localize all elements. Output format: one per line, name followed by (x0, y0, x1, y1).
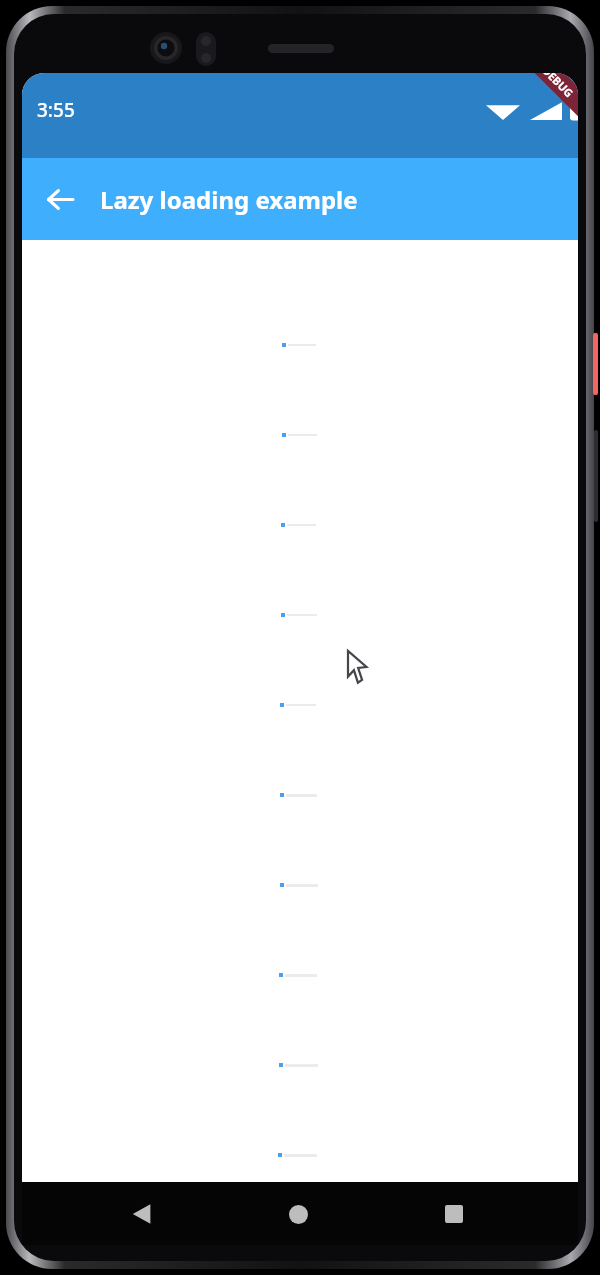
button[interactable] (282, 336, 342, 354)
button[interactable]: Back (32, 171, 88, 227)
button[interactable] (280, 696, 340, 714)
staticText: DEBUG (539, 73, 577, 100)
button[interactable] (280, 786, 340, 804)
button[interactable] (281, 516, 341, 534)
button[interactable] (278, 1146, 338, 1164)
button[interactable] (280, 876, 340, 894)
button[interactable] (279, 1056, 339, 1074)
other: Power (593, 333, 598, 395)
staticText: 3:55 (37, 97, 75, 123)
staticText: Lazy loading example (100, 183, 358, 216)
button[interactable] (281, 606, 341, 624)
button[interactable]: Home (272, 1188, 324, 1240)
button[interactable] (282, 426, 342, 444)
button[interactable]: Back (116, 1188, 168, 1240)
other: Volume (594, 430, 598, 522)
button[interactable] (279, 966, 339, 984)
button[interactable]: Recent apps (428, 1188, 480, 1240)
